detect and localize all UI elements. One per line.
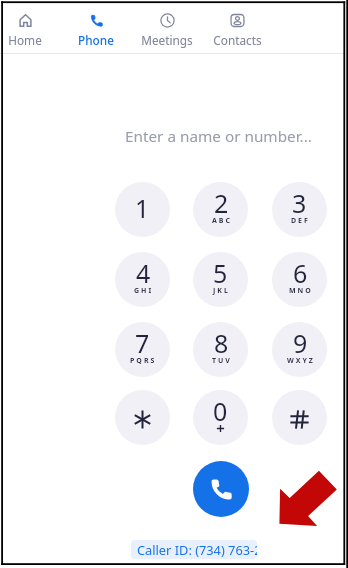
staticText: 6 [293,256,308,290]
staticText: WXYZ [287,356,315,366]
staticText: ABC [212,216,232,226]
button[interactable]: Meetings [136,3,198,51]
staticText: 8 [214,326,229,360]
staticText: 5 [213,256,228,290]
staticText: 0 [213,394,228,428]
staticText: GHI [134,286,154,296]
staticText: 2 [214,186,229,220]
button[interactable]: 1 [115,182,170,237]
staticText: PQRS [130,356,157,366]
staticText: Home [8,32,42,48]
staticText: 4 [136,256,151,290]
button[interactable]: Contacts [206,3,268,51]
button[interactable]: 7 [115,322,170,377]
button[interactable]: 5 [193,252,248,307]
button[interactable]: 3 [272,182,327,237]
button[interactable]: Phone [65,3,127,51]
staticText: Contacts [213,32,262,48]
button[interactable] [272,390,327,445]
button[interactable]: 4 [115,252,170,307]
button[interactable]: 8 [193,322,248,377]
staticText: Meetings [141,32,193,48]
button[interactable]: Caller ID: (734) 763-2 [131,540,257,559]
staticText: JKL [213,286,230,296]
button[interactable] [115,390,170,445]
staticText: Phone [78,32,114,48]
staticText: 9 [293,326,308,360]
staticText: 3 [292,186,307,220]
staticText: MNO [289,286,313,296]
staticText: Caller ID: (734) 763-2 [137,541,257,558]
button[interactable]: 6 [272,252,327,307]
button[interactable]: Call [193,461,249,517]
button[interactable]: Home [0,3,56,51]
staticText: Enter a name or number... [125,126,312,147]
staticText: 1 [135,191,150,225]
staticText: 7 [135,326,150,360]
button[interactable]: 2 [193,182,248,237]
button[interactable]: 9 [272,322,327,377]
button[interactable]: 0 [193,390,248,445]
staticText: TUV [212,356,232,366]
staticText: DEF [291,216,310,226]
